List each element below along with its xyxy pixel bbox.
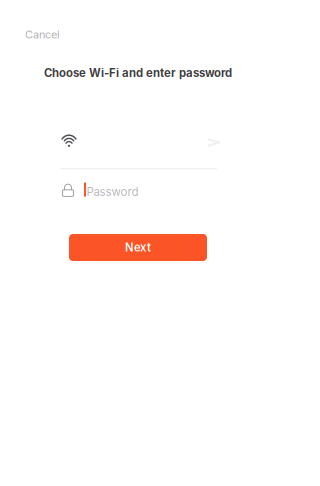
staticText: Choose Wi-Fi and enter password	[44, 66, 232, 80]
button[interactable]: Choose Wi-Fi network	[60, 134, 218, 170]
button[interactable]: Cancel	[17, 23, 75, 45]
staticText: Next	[125, 241, 151, 254]
staticText: Password	[87, 185, 139, 199]
button[interactable]: Next	[69, 234, 207, 261]
staticText: Cancel	[25, 28, 60, 41]
button[interactable]: Password	[60, 182, 218, 200]
